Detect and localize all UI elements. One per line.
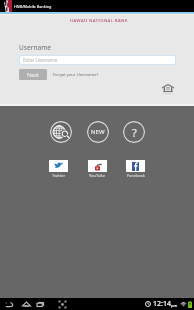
button[interactable]: Enter Username [20,56,175,64]
button[interactable]: Back [3,299,14,310]
staticText: Next [27,71,40,78]
button[interactable]: Next [19,69,47,80]
button[interactable]: YouTube [88,160,107,178]
button[interactable]: Help [123,121,145,143]
staticText: Enter Username [23,57,58,63]
button[interactable]: Screenshot [57,299,68,310]
staticText: pm [171,303,178,308]
button[interactable]: What's New [87,121,109,143]
staticText: YouTube [89,173,106,178]
staticText: HAWAII NATIONAL BANK [70,18,128,24]
button[interactable]: Recent apps [35,299,46,310]
button[interactable]: Forgot your Username? [53,72,99,78]
button[interactable]: Twitter [49,160,68,178]
staticText: HNB/Mobile Banking [14,4,52,9]
staticText: 12:14 [153,299,171,309]
staticText: Username [19,43,52,52]
staticText: Facebook [127,173,145,178]
button[interactable]: Home [21,299,32,310]
button[interactable]: Home [162,84,174,92]
staticText: NEW [91,128,105,136]
staticText: Twitter [52,173,66,178]
button[interactable]: Search the web [50,121,72,143]
staticText: ? [132,125,137,140]
button[interactable]: Facebook [126,160,145,178]
